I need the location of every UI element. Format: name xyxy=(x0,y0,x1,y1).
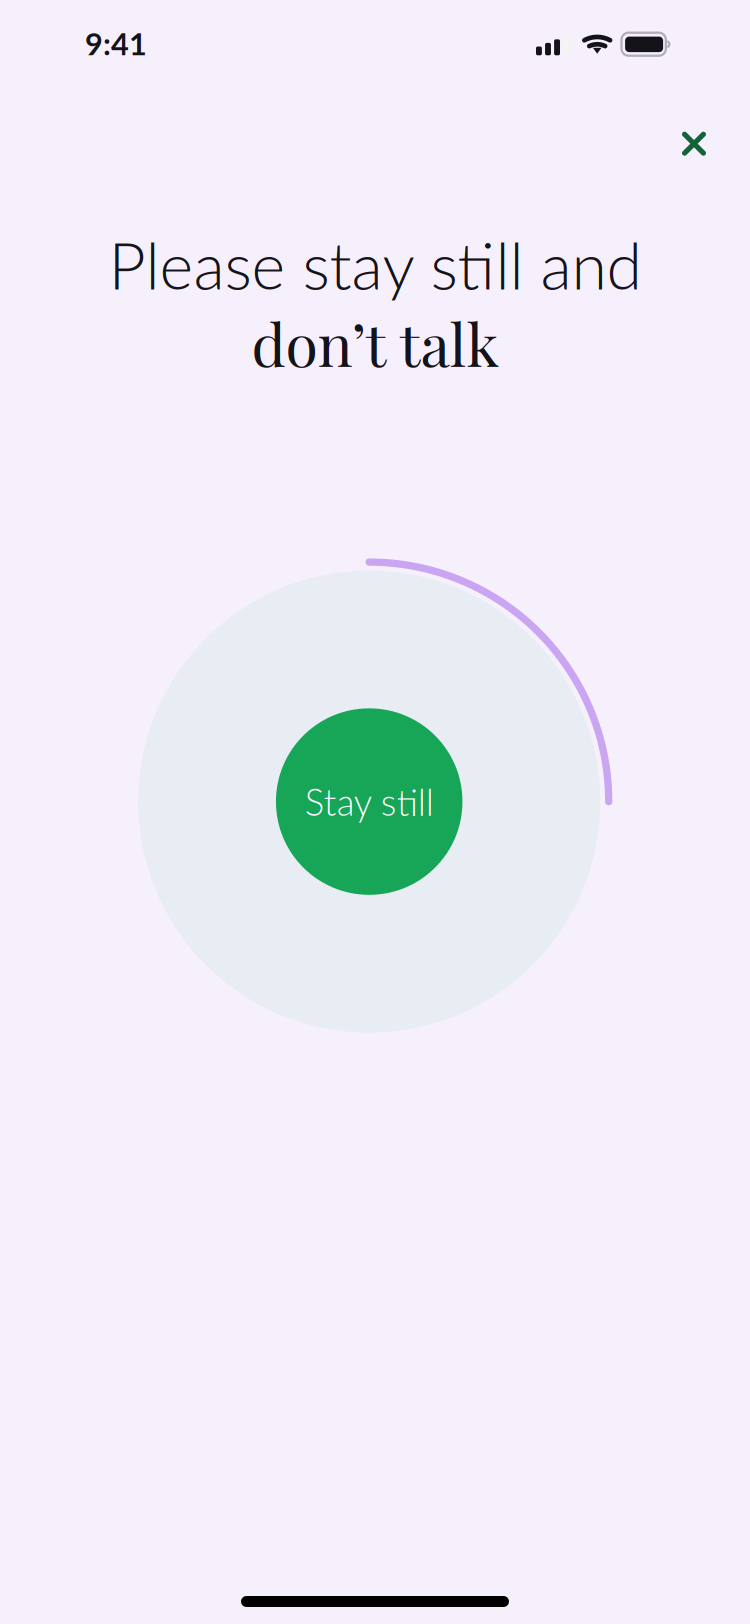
button[interactable]: Close xyxy=(660,110,728,178)
staticText: Stay still xyxy=(305,780,434,824)
button[interactable]: Stay still xyxy=(276,708,462,895)
staticText: Please stay still and xyxy=(108,226,641,303)
staticText: don’t talk xyxy=(251,303,498,382)
staticText: 9:41 xyxy=(85,25,147,62)
